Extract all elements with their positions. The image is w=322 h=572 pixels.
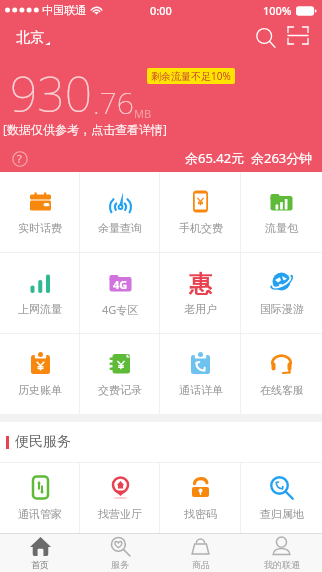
staticText: 通话详单 [179,383,223,397]
button[interactable]: 在线客服 [241,334,322,414]
button[interactable]: 手机交费 [160,172,241,252]
staticText: 查归属地 [260,507,304,521]
staticText: 4G专区 [102,302,139,317]
staticText: 交费记录 [98,383,142,397]
button[interactable]: 商品 [160,534,241,572]
button[interactable]: 找密码 [160,463,241,533]
staticText: 实时话费 [18,221,62,235]
button[interactable]: 余量查询 [80,172,160,252]
staticText: 首页 [31,559,49,570]
staticText: 100% [263,3,292,18]
staticText: 4G [113,277,128,292]
staticText: 手机交费 [179,221,223,235]
button[interactable]: 流量包 [241,172,322,252]
staticText: 930 [10,61,93,126]
staticText: 老用户 [184,302,217,316]
button[interactable]: 上网流量 [0,253,80,333]
button[interactable]: 通话详单 [160,334,241,414]
button[interactable]: Search [250,22,282,54]
staticText: MB [134,106,152,121]
button[interactable]: [数据仅供参考，点击查看详情] [3,121,167,137]
staticText: 找密码 [184,507,217,521]
button[interactable]: 首页 [0,534,80,572]
staticText: 我的联通 [264,559,300,570]
button[interactable]: 4G [80,253,160,333]
button[interactable]: 历史账单 [0,334,80,414]
button[interactable]: 剩余流量不足10% [147,68,235,84]
button[interactable]: 我的联通 [241,534,322,572]
staticText: 余65.42元 余263分钟 [185,149,313,167]
button[interactable]: 交费记录 [80,334,160,414]
staticText: 流量包 [265,221,298,235]
button[interactable]: 国际漫游 [241,253,322,333]
staticText: 余量查询 [98,221,142,235]
staticText: 通讯管家 [18,507,62,521]
staticText: 惠 [189,270,212,295]
button[interactable]: 通讯管家 [0,463,80,533]
button[interactable]: Help [11,150,28,167]
button[interactable]: 查归属地 [241,463,322,533]
staticText: 找营业厅 [98,507,142,521]
staticText: 上网流量 [18,302,62,316]
staticText: 国际漫游 [260,302,304,316]
button[interactable]: 服务 [80,534,160,572]
staticText: 北京 [16,29,44,47]
button[interactable]: Scan QR code [282,19,314,51]
staticText: .76 [93,82,134,123]
button[interactable]: 北京 [16,25,50,51]
staticText: 商品 [192,559,210,570]
button[interactable]: 惠 [160,253,241,333]
button[interactable]: 实时话费 [0,172,80,252]
staticText: 便民服务 [15,433,71,451]
staticText: 在线客服 [260,383,304,397]
button[interactable]: 找营业厅 [80,463,160,533]
staticText: ? [17,151,22,166]
staticText: 0:00 [150,3,172,18]
staticText: 服务 [111,559,129,570]
staticText: 历史账单 [18,383,62,397]
staticText: 剩余流量不足10% [151,69,231,83]
staticText: 中国联通 [42,3,86,17]
